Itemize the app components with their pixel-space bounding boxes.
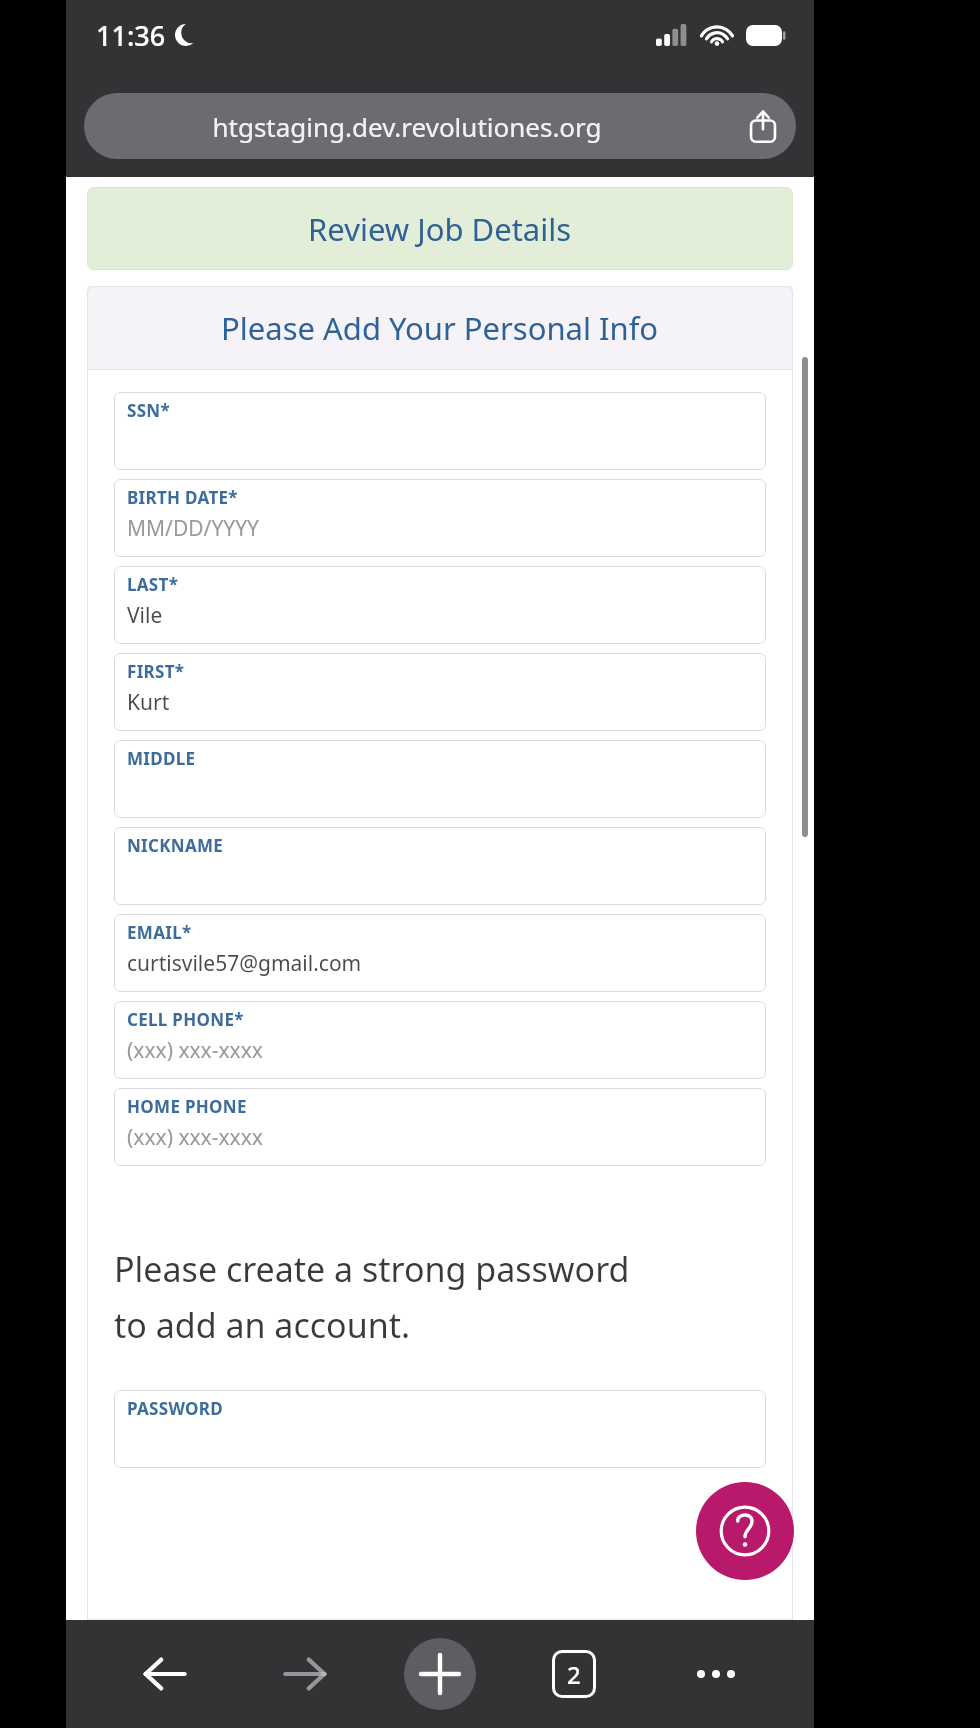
staticText: MIDDLE bbox=[127, 747, 196, 770]
button[interactable]: New tab bbox=[404, 1638, 476, 1710]
button[interactable]: HOME PHONE bbox=[114, 1088, 766, 1166]
staticText: (xxx) xxx-xxxx bbox=[127, 1123, 263, 1152]
button[interactable]: FIRST* bbox=[114, 653, 766, 731]
button[interactable]: Tabs bbox=[530, 1630, 618, 1718]
button[interactable]: NICKNAME bbox=[114, 827, 766, 905]
button[interactable]: EMAIL* bbox=[114, 914, 766, 992]
button[interactable]: LAST* bbox=[114, 566, 766, 644]
staticText: PASSWORD bbox=[127, 1397, 223, 1420]
button[interactable]: BIRTH DATE* bbox=[114, 479, 766, 557]
staticText: 2 bbox=[567, 1658, 581, 1691]
staticText: htgstaging.dev.revolutiones.org bbox=[212, 109, 602, 144]
staticText: NICKNAME bbox=[127, 834, 224, 857]
staticText: BIRTH DATE* bbox=[127, 486, 238, 509]
button[interactable]: Review Job Details bbox=[87, 187, 793, 270]
staticText: Please Add Your Personal Info bbox=[221, 307, 659, 349]
button[interactable]: Back bbox=[120, 1630, 208, 1718]
staticText: MM/DD/YYYY bbox=[127, 514, 259, 543]
staticText: Review Job Details bbox=[308, 208, 572, 250]
button[interactable]: MIDDLE bbox=[114, 740, 766, 818]
button[interactable]: More options bbox=[672, 1630, 760, 1718]
staticText: FIRST* bbox=[127, 660, 185, 683]
staticText: SSN* bbox=[127, 399, 170, 422]
staticText: Please create a strong password to add a… bbox=[114, 1246, 630, 1348]
button[interactable]: CELL PHONE* bbox=[114, 1001, 766, 1079]
staticText: 11:36 bbox=[96, 17, 166, 54]
button[interactable]: PASSWORD bbox=[114, 1390, 766, 1468]
staticText: LAST* bbox=[127, 573, 179, 596]
button[interactable]: htgstaging.dev.revolutiones.org bbox=[84, 93, 796, 159]
button[interactable]: SSN* bbox=[114, 392, 766, 470]
staticText: EMAIL* bbox=[127, 921, 192, 944]
button[interactable]: Forward bbox=[262, 1630, 350, 1718]
staticText: CELL PHONE* bbox=[127, 1008, 244, 1031]
button[interactable]: Help bbox=[696, 1482, 794, 1580]
staticText: (xxx) xxx-xxxx bbox=[127, 1036, 263, 1065]
staticText: HOME PHONE bbox=[127, 1095, 247, 1118]
button[interactable]: Share bbox=[730, 93, 796, 159]
staticText: curtisvile57@gmail.com bbox=[127, 949, 362, 978]
staticText: Vile bbox=[127, 601, 163, 630]
staticText: Kurt bbox=[127, 688, 170, 717]
